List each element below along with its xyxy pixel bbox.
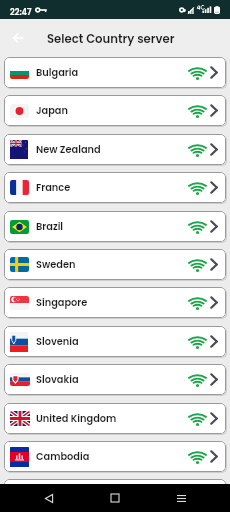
button[interactable]: France	[4, 172, 226, 203]
staticText: France	[36, 181, 71, 195]
staticText: Sweden	[36, 258, 76, 272]
staticText: Bulgaria	[36, 66, 79, 80]
button[interactable]: New Zealand	[4, 134, 226, 165]
staticText: Brazil	[36, 220, 64, 234]
button[interactable]: Sweden	[4, 249, 226, 280]
staticText: 22:47	[10, 6, 32, 17]
staticText: New Zealand	[36, 143, 101, 157]
staticText: Canada	[36, 488, 77, 502]
button[interactable]: Home	[98, 484, 132, 512]
staticText: Select Country server	[47, 31, 175, 47]
button[interactable]: Recent apps	[164, 484, 198, 512]
button[interactable]: Slovakia	[4, 364, 226, 395]
staticText: Japan	[36, 104, 68, 118]
button[interactable]: Back	[7, 27, 29, 49]
staticText: Slovenia	[36, 335, 79, 349]
button[interactable]: United Kingdom	[4, 403, 226, 434]
button[interactable]: Cambodia	[4, 441, 226, 472]
button[interactable]: Singapore	[4, 287, 226, 318]
button[interactable]: Back	[32, 484, 66, 512]
staticText: Slovakia	[36, 373, 79, 387]
button[interactable]: Brazil	[4, 211, 226, 242]
button[interactable]: Japan	[4, 95, 226, 126]
staticText: Cambodia	[36, 450, 90, 464]
staticText: United Kingdom	[36, 412, 117, 426]
button[interactable]: Bulgaria	[4, 57, 226, 88]
staticText: Singapore	[36, 296, 88, 310]
button[interactable]: Canada	[4, 479, 226, 510]
button[interactable]: Slovenia	[4, 326, 226, 357]
